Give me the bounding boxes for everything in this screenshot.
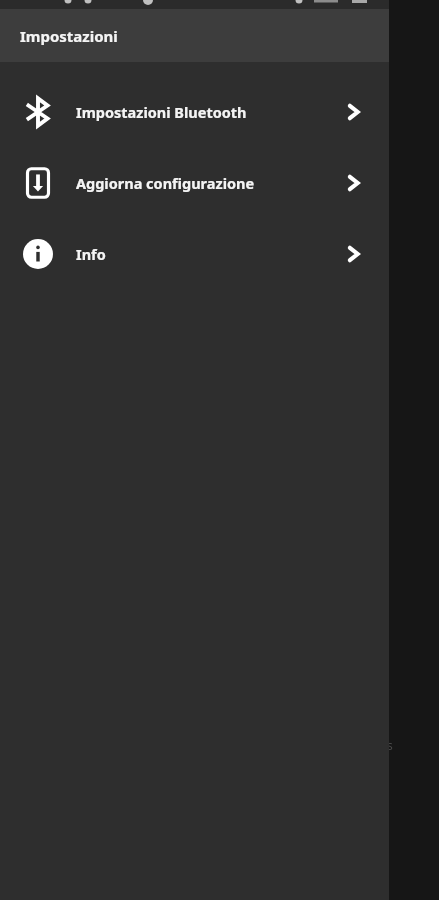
other: Info [23,239,53,269]
button[interactable]: Bluetooth [0,76,389,147]
staticText: Info [76,244,317,264]
button[interactable]: Info [0,218,389,289]
staticText: s [387,737,393,753]
other: Apri [340,241,366,267]
other: Apri [340,170,366,196]
button[interactable]: Aggiorna configurazione [0,147,389,218]
staticText: Aggiorna configurazione [76,173,317,193]
staticText: Impostazioni [20,26,118,46]
other: Bluetooth [21,95,55,129]
other: Aggiorna configurazione [23,168,53,198]
other: Apri [340,99,366,125]
staticText: Impostazioni Bluetooth [76,102,317,122]
